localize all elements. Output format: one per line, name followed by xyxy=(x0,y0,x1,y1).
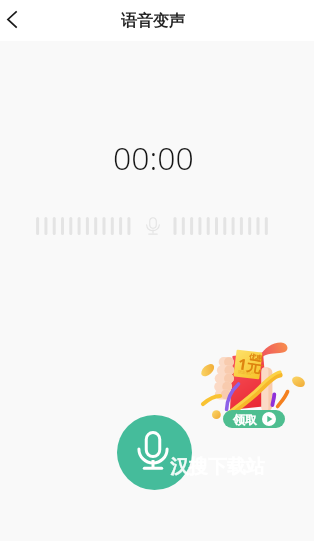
staticText: 语音变声 xyxy=(121,11,185,31)
staticText: ——— xyxy=(249,360,265,369)
button[interactable]: Record xyxy=(117,415,192,490)
button[interactable]: 领取 xyxy=(223,410,285,428)
staticText: 1元 xyxy=(237,353,263,377)
staticText: 限新用户 xyxy=(238,369,254,376)
staticText: 00:00 xyxy=(113,136,194,180)
staticText: 汉搜下载站 xyxy=(170,455,265,479)
staticText: 优惠 xyxy=(248,352,264,363)
button[interactable]: Back xyxy=(0,0,30,41)
staticText: 领取 xyxy=(233,412,257,427)
